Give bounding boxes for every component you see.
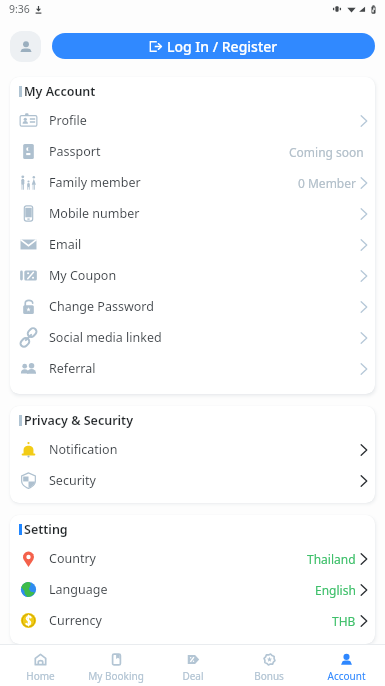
staticText: Email — [49, 236, 82, 253]
staticText: Language — [49, 581, 108, 598]
button[interactable]: Profile avatar — [10, 31, 41, 62]
button[interactable]: My Coupon — [10, 260, 375, 291]
staticText: Referral — [49, 360, 96, 377]
button[interactable]: My Booking — [79, 647, 153, 685]
button[interactable]: Security — [10, 465, 375, 496]
staticText: Security — [49, 472, 96, 489]
staticText: Country — [49, 550, 96, 567]
staticText: English — [315, 582, 356, 598]
staticText: Profile — [49, 112, 87, 129]
button[interactable]: Deal — [156, 647, 230, 685]
button[interactable]: Account — [309, 647, 383, 685]
staticText: Home — [26, 669, 55, 683]
staticText: Log In / Register — [167, 37, 278, 56]
button[interactable]: Referral — [10, 353, 375, 384]
button[interactable]: Social media linked — [10, 322, 375, 353]
staticText: My Account — [24, 83, 96, 100]
staticText: Coming soon — [289, 144, 364, 160]
staticText: Social media linked — [49, 329, 162, 346]
staticText: Mobile number — [49, 205, 140, 222]
staticText: Bonus — [254, 669, 284, 683]
staticText: Thailand — [307, 551, 356, 567]
staticText: Deal — [182, 669, 204, 683]
button[interactable]: Currency — [10, 605, 375, 636]
staticText: My Coupon — [49, 267, 117, 284]
staticText: Privacy & Security — [24, 412, 134, 429]
staticText: My Booking — [88, 669, 144, 683]
button[interactable]: Profile — [10, 105, 375, 136]
staticText: Currency — [49, 612, 102, 629]
staticText: 9:36 — [9, 2, 30, 16]
button[interactable]: Change Password — [10, 291, 375, 322]
staticText: Account — [327, 669, 366, 683]
staticText: Passport — [49, 143, 101, 160]
button[interactable]: Email — [10, 229, 375, 260]
staticText: Change Password — [49, 298, 154, 315]
button[interactable]: Passport — [10, 136, 375, 167]
staticText: 0 Member — [298, 175, 356, 191]
staticText: Family member — [49, 174, 141, 191]
staticText: THB — [332, 613, 356, 629]
button[interactable]: Language — [10, 574, 375, 605]
staticText: Setting — [24, 521, 68, 538]
staticText: Notification — [49, 441, 118, 458]
button[interactable]: Country — [10, 543, 375, 574]
button[interactable]: Family member — [10, 167, 375, 198]
button[interactable]: Home — [3, 647, 77, 685]
button[interactable]: Mobile number — [10, 198, 375, 229]
button[interactable]: Log In / Register — [52, 33, 375, 59]
button[interactable]: Notification — [10, 434, 375, 465]
button[interactable]: Bonus — [232, 647, 306, 685]
